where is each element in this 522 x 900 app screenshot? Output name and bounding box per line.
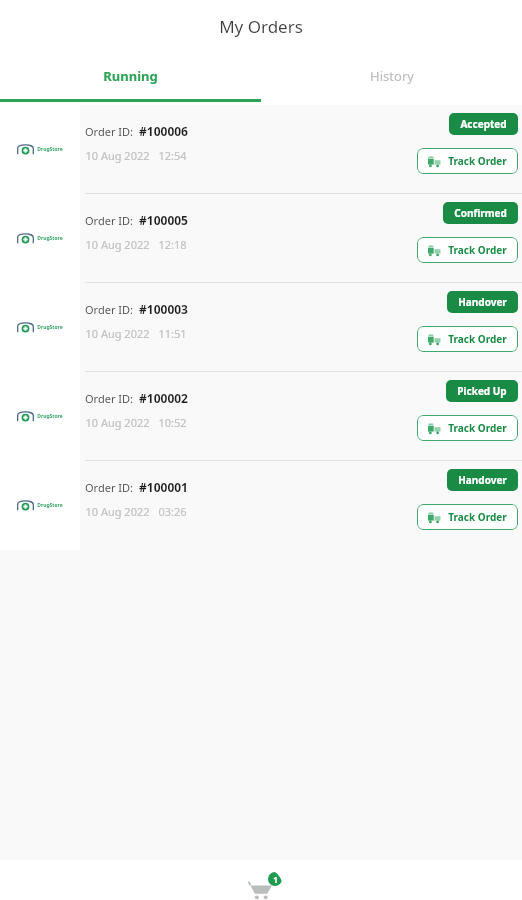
staticText: DrugStore	[37, 502, 63, 509]
staticText: DrugStore	[37, 324, 63, 331]
button[interactable]: Accepted	[449, 113, 518, 135]
staticText: Picked Up	[457, 384, 507, 398]
staticText: Confirmed	[454, 206, 507, 220]
staticText: DrugStore	[37, 146, 63, 153]
staticText: Running	[103, 67, 158, 85]
button[interactable]: DrugStore	[0, 105, 522, 194]
staticText: Order ID:	[85, 213, 133, 228]
staticText: 12:18	[158, 237, 187, 252]
button[interactable]: Track Order	[417, 326, 518, 352]
staticText: #100006	[139, 123, 188, 139]
button[interactable]: Handover	[447, 469, 518, 491]
button[interactable]: Confirmed	[443, 202, 518, 224]
button[interactable]: DrugStore	[0, 283, 522, 372]
staticText: Track Order	[448, 332, 507, 346]
staticText: 10 Aug 2022	[85, 148, 150, 163]
button[interactable]: Track Order	[417, 237, 518, 263]
staticText: Track Order	[448, 154, 507, 168]
staticText: Handover	[458, 473, 507, 487]
staticText: Order ID:	[85, 302, 133, 317]
button[interactable]: DrugStore	[0, 372, 522, 461]
staticText: 10 Aug 2022	[85, 237, 150, 252]
staticText: Track Order	[448, 421, 507, 435]
staticText: 12:54	[158, 148, 187, 163]
staticText: 03:26	[158, 504, 187, 519]
staticText: Accepted	[460, 117, 507, 131]
staticText: #100001	[139, 479, 188, 495]
staticText: Track Order	[448, 510, 507, 524]
staticText: DrugStore	[37, 413, 63, 420]
staticText: 10 Aug 2022	[85, 415, 150, 430]
staticText: Track Order	[448, 243, 507, 257]
staticText: Order ID:	[85, 391, 133, 406]
button[interactable]: Cart	[239, 868, 283, 900]
button[interactable]: DrugStore	[0, 194, 522, 283]
staticText: 1	[273, 874, 278, 885]
staticText: 10 Aug 2022	[85, 504, 150, 519]
staticText: #100005	[139, 212, 188, 228]
button[interactable]: Picked Up	[446, 380, 518, 402]
button[interactable]: Running	[0, 52, 261, 99]
staticText: 10 Aug 2022	[85, 326, 150, 341]
staticText: #100003	[139, 301, 188, 317]
staticText: DrugStore	[37, 235, 63, 242]
staticText: 10:52	[158, 415, 187, 430]
staticText: 11:51	[158, 326, 187, 341]
staticText: Order ID:	[85, 124, 133, 139]
button[interactable]: History	[261, 52, 522, 99]
staticText: History	[370, 67, 414, 85]
button[interactable]: Handover	[447, 291, 518, 313]
staticText: Order ID:	[85, 480, 133, 495]
staticText: #100002	[139, 390, 188, 406]
button[interactable]: DrugStore	[0, 461, 522, 550]
staticText: My Orders	[219, 15, 303, 38]
button[interactable]: Track Order	[417, 504, 518, 530]
button[interactable]: Track Order	[417, 148, 518, 174]
button[interactable]: Track Order	[417, 415, 518, 441]
staticText: Handover	[458, 295, 507, 309]
